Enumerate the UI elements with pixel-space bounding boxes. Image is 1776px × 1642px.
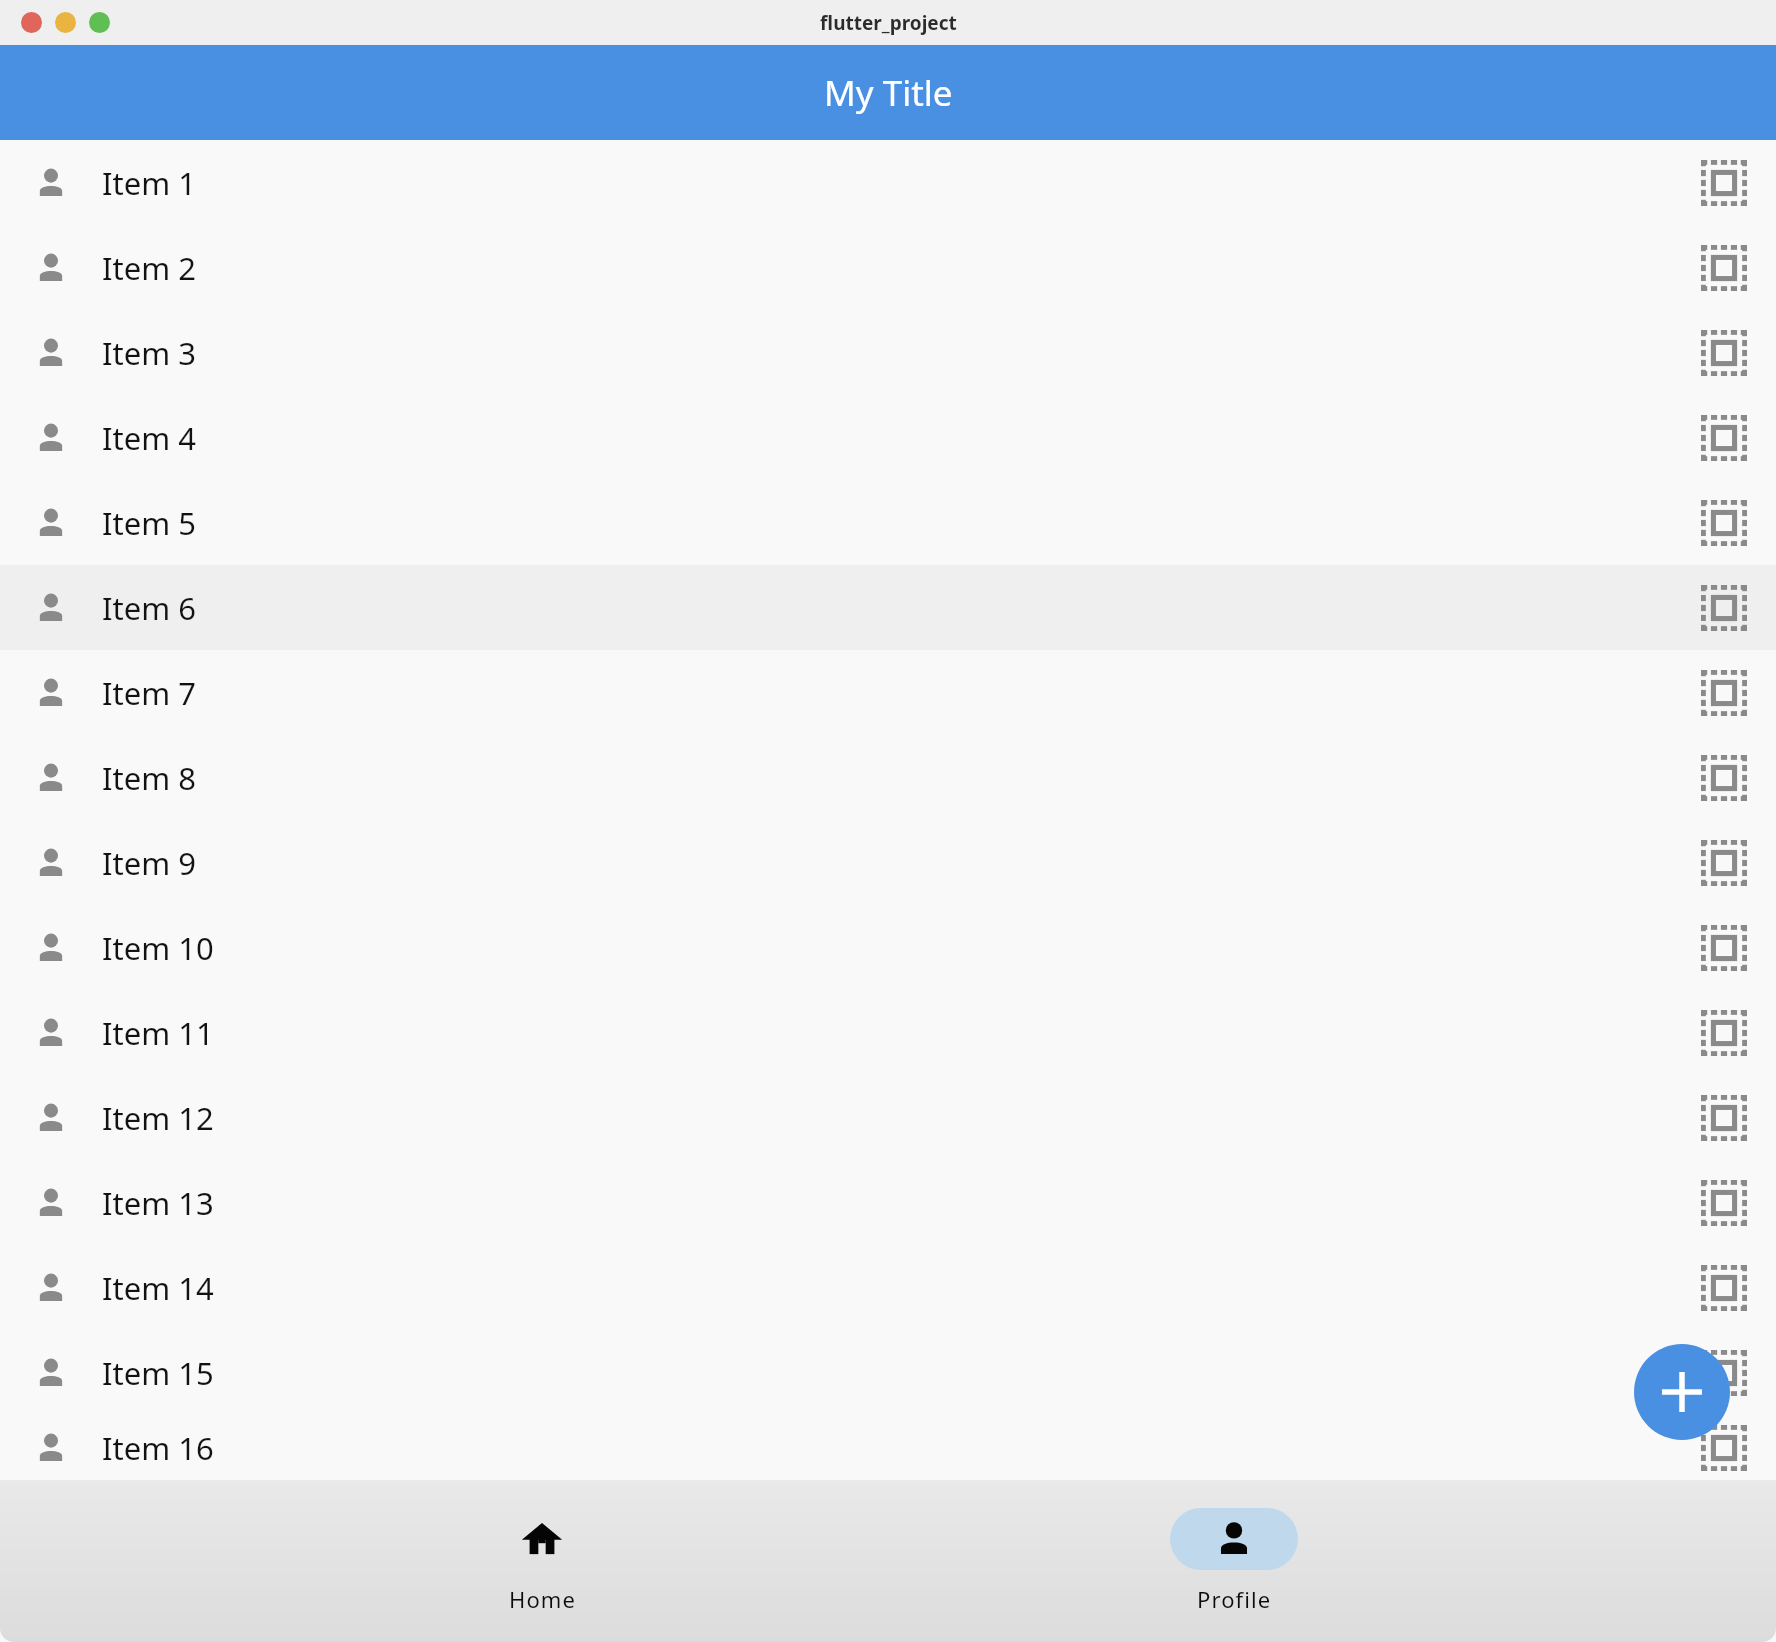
button[interactable]: Item 7 (0, 650, 1776, 735)
button[interactable]: Select all (1688, 657, 1760, 729)
button[interactable]: Item 1 (0, 140, 1776, 225)
staticText: Item 10 (102, 927, 214, 969)
staticText: Item 16 (102, 1427, 214, 1469)
staticText: Item 13 (102, 1182, 214, 1224)
button[interactable]: Select all (1688, 317, 1760, 389)
button[interactable]: Item 8 (0, 735, 1776, 820)
button[interactable]: Add (1634, 1344, 1730, 1440)
staticText: Item 9 (102, 842, 196, 884)
button[interactable]: Select all (1688, 1252, 1760, 1324)
button[interactable]: Item 14 (0, 1245, 1776, 1330)
button[interactable]: Item 10 (0, 905, 1776, 990)
staticText: Item 1 (102, 162, 196, 204)
button[interactable]: Item 11 (0, 990, 1776, 1075)
button[interactable]: Item 2 (0, 225, 1776, 310)
button[interactable]: Select all (1688, 997, 1760, 1069)
button[interactable]: Select all (1688, 402, 1760, 474)
button[interactable]: Select all (1688, 912, 1760, 984)
button[interactable]: Item 15 (0, 1330, 1776, 1415)
button[interactable]: Item 4 (0, 395, 1776, 480)
staticText: Profile (1197, 1584, 1272, 1614)
button[interactable]: Item 16 (0, 1415, 1776, 1480)
button[interactable]: Item 5 (0, 480, 1776, 565)
button[interactable]: Item 12 (0, 1075, 1776, 1160)
staticText: Item 11 (102, 1012, 214, 1054)
button[interactable]: Select all (1688, 1167, 1760, 1239)
button[interactable]: Item 6 (0, 565, 1776, 650)
button[interactable]: Select all (1688, 487, 1760, 559)
button[interactable]: Select all (1688, 572, 1760, 644)
button[interactable] (21, 12, 42, 33)
button[interactable]: Select all (1688, 1082, 1760, 1154)
staticText: Item 5 (102, 502, 196, 544)
button[interactable]: Select all (1688, 232, 1760, 304)
staticText: Item 8 (102, 757, 196, 799)
staticText: My Title (824, 69, 953, 117)
staticText: Item 12 (102, 1097, 214, 1139)
staticText: Item 15 (102, 1352, 214, 1394)
button[interactable] (89, 12, 110, 33)
button[interactable]: Select all (1688, 827, 1760, 899)
staticText: Home (509, 1584, 576, 1614)
button[interactable]: Item 3 (0, 310, 1776, 395)
button[interactable]: Select all (1688, 1337, 1760, 1409)
button[interactable]: Select all (1688, 147, 1760, 219)
button[interactable]: Profile (1084, 1480, 1384, 1642)
button[interactable]: Item 13 (0, 1160, 1776, 1245)
button[interactable] (55, 12, 76, 33)
button[interactable]: Select all (1688, 1415, 1760, 1480)
staticText: Item 3 (102, 332, 196, 374)
staticText: flutter_project (820, 10, 957, 36)
staticText: Item 2 (102, 247, 196, 289)
button[interactable]: Home (392, 1480, 692, 1642)
staticText: Item 4 (102, 417, 196, 459)
staticText: Item 14 (102, 1267, 214, 1309)
button[interactable]: Select all (1688, 742, 1760, 814)
staticText: Item 7 (102, 672, 196, 714)
button[interactable]: Item 9 (0, 820, 1776, 905)
staticText: Item 6 (102, 587, 196, 629)
